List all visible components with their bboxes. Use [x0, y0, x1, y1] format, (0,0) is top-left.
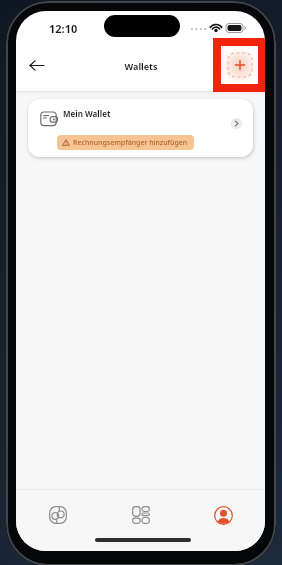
staticText: Wallets [124, 60, 158, 72]
staticText: 12:10 [49, 21, 78, 36]
button[interactable] [187, 495, 260, 535]
button[interactable] [213, 38, 265, 92]
button[interactable] [24, 55, 50, 77]
button[interactable]: Rechnungsempfänger hinzufügen [57, 135, 194, 150]
button[interactable]: Mein Wallet [28, 99, 253, 157]
staticText: Rechnungsempfänger hinzufügen [73, 138, 188, 148]
staticText: Mein Wallet [63, 108, 111, 119]
button[interactable] [21, 495, 94, 535]
button[interactable] [104, 495, 177, 535]
